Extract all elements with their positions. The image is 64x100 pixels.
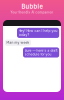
staticText: Sure — here's a draft schedule for you (25, 49, 58, 56)
staticText: Bubble (21, 3, 42, 10)
staticText: Your friendly AI companion (10, 11, 53, 14)
staticText: Plan my week (6, 41, 29, 45)
staticText: Hey! How can I help you today? (19, 29, 58, 37)
